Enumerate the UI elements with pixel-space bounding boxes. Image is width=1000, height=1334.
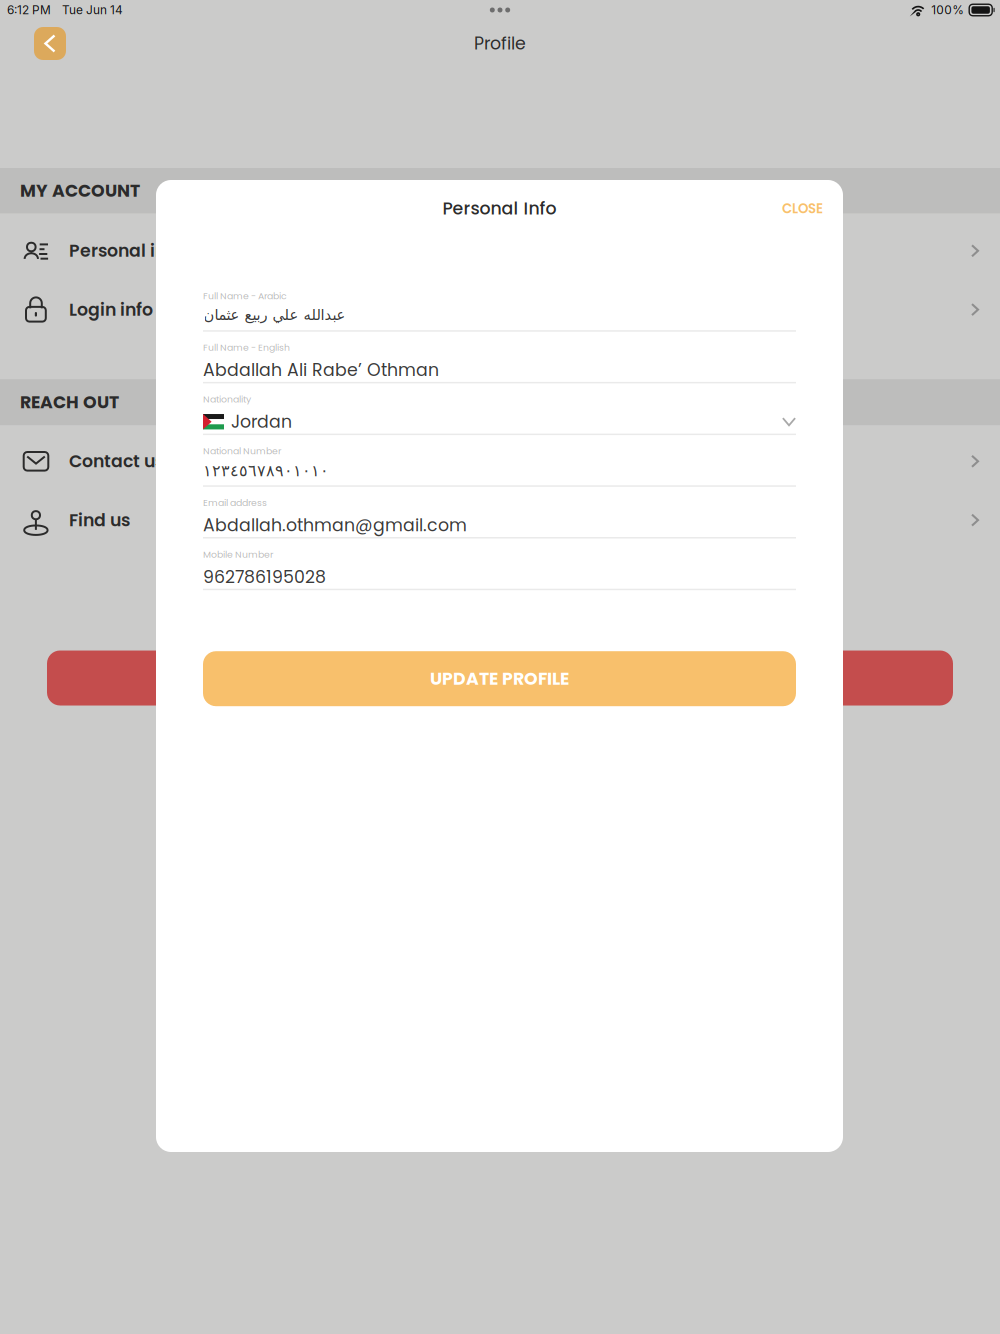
staticText: Full Name - English (203, 341, 290, 354)
staticText: Find us (69, 508, 130, 532)
button[interactable]: Find us (0, 491, 1000, 549)
staticText: Full Name - Arabic (203, 289, 287, 302)
staticText: Personal info (69, 239, 183, 263)
staticText: Login info (69, 298, 153, 321)
button[interactable]: UPDATE PROFILE (203, 651, 796, 706)
staticText: Jordan (231, 410, 292, 434)
staticText: ١٢٣٤٥٦٧٨٩٠١٠١٠ (203, 462, 329, 480)
button[interactable]: Login info (0, 280, 1000, 339)
staticText: National Number (203, 445, 281, 457)
staticText: Contact us (69, 449, 164, 473)
staticText: CLOSE (782, 199, 823, 218)
staticText: عبدالله علي ربيع عثمان (203, 306, 345, 323)
staticText: Profile (474, 32, 526, 55)
button[interactable]: Personal info (0, 221, 1000, 280)
staticText: Personal Info (442, 197, 556, 220)
button[interactable]: CLOSE (782, 199, 823, 218)
staticText: Tue Jun 14 (62, 3, 123, 17)
staticText: Mobile Number (203, 548, 273, 561)
staticText: Abdallah Ali Rabe’ Othman (203, 358, 439, 382)
staticText: MY ACCOUNT (20, 179, 140, 203)
staticText: UPDATE PROFILE (430, 667, 569, 691)
staticText: Abdallah.othman@gmail.com (203, 513, 467, 537)
staticText: Email address (203, 496, 267, 509)
button[interactable]: Back (34, 27, 66, 60)
staticText: REACH OUT (20, 390, 119, 414)
button[interactable]: Contact us (0, 432, 1000, 491)
button[interactable]: LOG OUT (47, 650, 953, 705)
staticText: 100% (931, 3, 964, 17)
staticText: 6:12 PM (7, 3, 51, 17)
staticText: 962786195028 (203, 565, 326, 589)
staticText: Nationality (203, 393, 251, 406)
staticText: LOG OUT (462, 666, 537, 690)
